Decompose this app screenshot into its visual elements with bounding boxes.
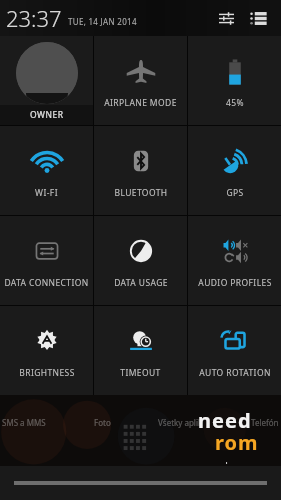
staticText: TIMEOUT <box>120 367 161 379</box>
button[interactable]: AUTO ROTATION <box>188 306 281 395</box>
staticText: BLUETOOTH <box>114 187 168 199</box>
button[interactable]: WI-FI <box>0 126 93 215</box>
staticText: Všetky aplik <box>158 417 203 428</box>
staticText: OWNER <box>30 109 64 121</box>
button[interactable]: Notifications list <box>243 3 273 33</box>
staticText: Telefón <box>251 417 279 428</box>
button[interactable]: Settings sliders <box>211 3 241 33</box>
staticText: BRIGHTNESS <box>19 367 75 379</box>
staticText: rom <box>215 429 259 456</box>
button[interactable]: DATA CONNECTION <box>0 216 93 305</box>
button[interactable]: BLUETOOTH <box>94 126 187 215</box>
button[interactable]: Close quick settings <box>0 466 281 500</box>
button[interactable]: AUDIO PROFILES <box>188 216 281 305</box>
staticText: AUTO ROTATION <box>199 367 271 379</box>
staticText: www.needrom.com <box>179 459 271 464</box>
staticText: GPS <box>226 187 244 199</box>
button[interactable]: TIMEOUT <box>94 306 187 395</box>
button[interactable]: AIRPLANE MODE <box>94 36 187 125</box>
staticText: 23:37 <box>6 3 62 33</box>
staticText: WI-FI <box>35 187 58 199</box>
staticText: 45% <box>226 97 244 109</box>
button[interactable]: OWNER <box>0 36 93 125</box>
button[interactable]: DATA USAGE <box>94 216 187 305</box>
staticText: Foto <box>94 417 111 428</box>
staticText: AIRPLANE MODE <box>104 97 177 109</box>
button[interactable]: GPS <box>188 126 281 215</box>
staticText: TUE, 14 JAN 2014 <box>68 16 137 27</box>
staticText: AUDIO PROFILES <box>198 277 272 289</box>
button[interactable]: 45% <box>188 36 281 125</box>
staticText: DATA USAGE <box>114 277 168 289</box>
staticText: SMS a MMS <box>2 417 46 428</box>
staticText: need <box>198 407 252 434</box>
staticText: DATA CONNECTION <box>4 277 89 289</box>
button[interactable]: BRIGHTNESS <box>0 306 93 395</box>
